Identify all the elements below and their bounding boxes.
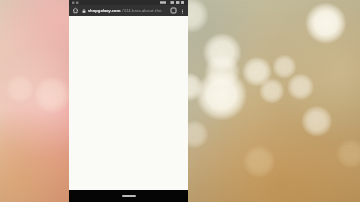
- button[interactable]: Home: [71, 6, 80, 15]
- button[interactable]: More options: [178, 7, 186, 15]
- staticText: /324-bras-about-the-tax-d: [122, 8, 168, 14]
- button[interactable]: Switch tabs: [169, 6, 178, 15]
- staticText: shopgalaxy.com: [88, 8, 121, 14]
- button[interactable]: Search or type web address: [82, 5, 168, 16]
- button[interactable]: Home gesture: [122, 195, 136, 197]
